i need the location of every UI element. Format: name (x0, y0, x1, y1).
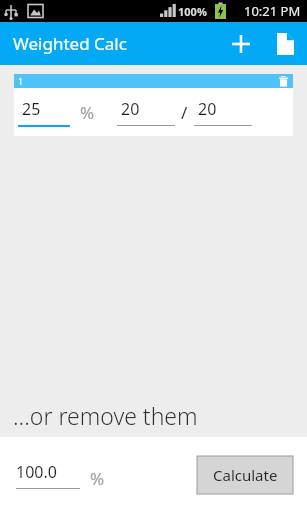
button[interactable]: Add (219, 22, 263, 65)
staticText: 10:21 PM (244, 2, 301, 20)
staticText: Weighted Calc (13, 32, 127, 55)
staticText: 25 (22, 98, 41, 120)
staticText: / (181, 101, 188, 124)
button[interactable]: 100.0 (16, 461, 80, 489)
staticText: % (80, 101, 95, 124)
staticText: % (90, 467, 105, 490)
staticText: ...or remove them (13, 400, 198, 431)
button[interactable]: 20 (194, 98, 252, 126)
staticText: 100.0 (16, 461, 57, 483)
button[interactable]: 25 (18, 98, 70, 127)
button[interactable]: Calculate (197, 456, 293, 494)
button[interactable]: 1 (14, 74, 293, 136)
button[interactable]: 20 (117, 98, 175, 126)
staticText: 20 (198, 98, 217, 120)
button[interactable]: Delete (278, 76, 289, 87)
staticText: 100% (178, 4, 207, 19)
button[interactable]: New document (263, 22, 307, 65)
staticText: 1 (18, 75, 24, 87)
staticText: 20 (121, 98, 140, 120)
staticText: Calculate (213, 465, 278, 485)
